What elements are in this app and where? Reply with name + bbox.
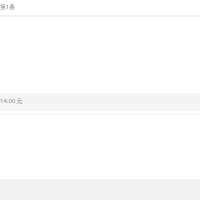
button[interactable]: 14.00 元 (0, 93, 200, 111)
staticText: 第1条 (0, 3, 15, 11)
button[interactable]: 第1条 (0, 0, 200, 15)
staticText: 14.00 元 (0, 97, 23, 105)
